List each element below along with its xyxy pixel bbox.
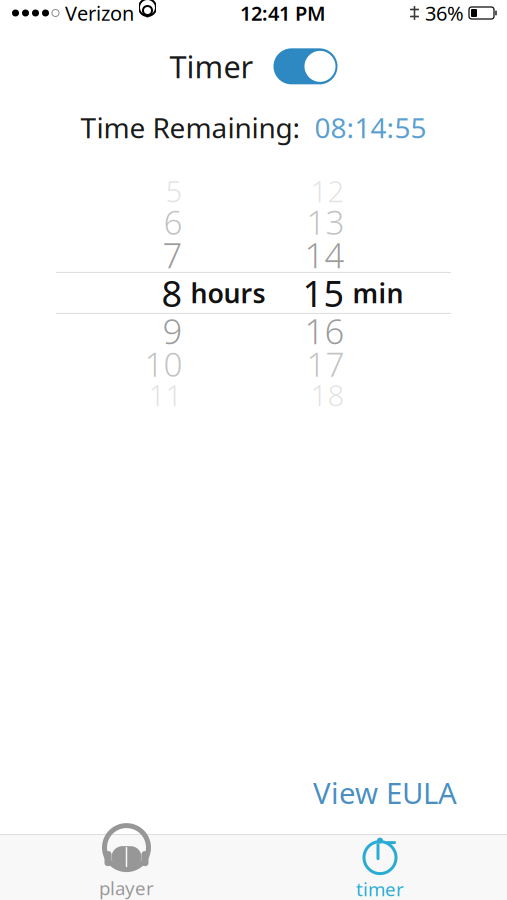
staticText: 16 <box>304 308 344 354</box>
staticText: 9 <box>162 308 182 354</box>
staticText: Timer <box>169 46 253 87</box>
staticText: 6 <box>163 200 182 244</box>
staticText: 12:41 PM <box>240 0 326 26</box>
button[interactable]: player <box>0 835 253 899</box>
staticText: 18 <box>310 375 344 414</box>
staticText: timer <box>356 877 404 900</box>
staticText: 5 <box>165 171 182 210</box>
staticText: 7 <box>162 232 182 278</box>
staticText: 10 <box>144 342 182 386</box>
staticText: 15 <box>302 269 344 317</box>
staticText: 36% <box>425 0 464 26</box>
staticText: player <box>99 876 154 900</box>
staticText: Verizon <box>65 0 134 26</box>
staticText: 8 <box>161 269 182 317</box>
button[interactable]: View EULA <box>303 767 467 818</box>
button[interactable]: Timer on <box>273 48 337 84</box>
staticText: hours <box>190 275 265 311</box>
staticText: 13 <box>306 200 344 244</box>
staticText: 12 <box>310 171 344 210</box>
staticText: View EULA <box>313 773 457 812</box>
staticText: 14 <box>304 232 344 278</box>
staticText: Time Remaining: <box>80 109 300 146</box>
staticText: 11 <box>148 375 182 414</box>
staticText: 08:14:55 <box>314 109 426 146</box>
button[interactable]: timer <box>253 835 507 899</box>
staticText: min <box>352 275 403 311</box>
staticText: 17 <box>306 342 344 386</box>
